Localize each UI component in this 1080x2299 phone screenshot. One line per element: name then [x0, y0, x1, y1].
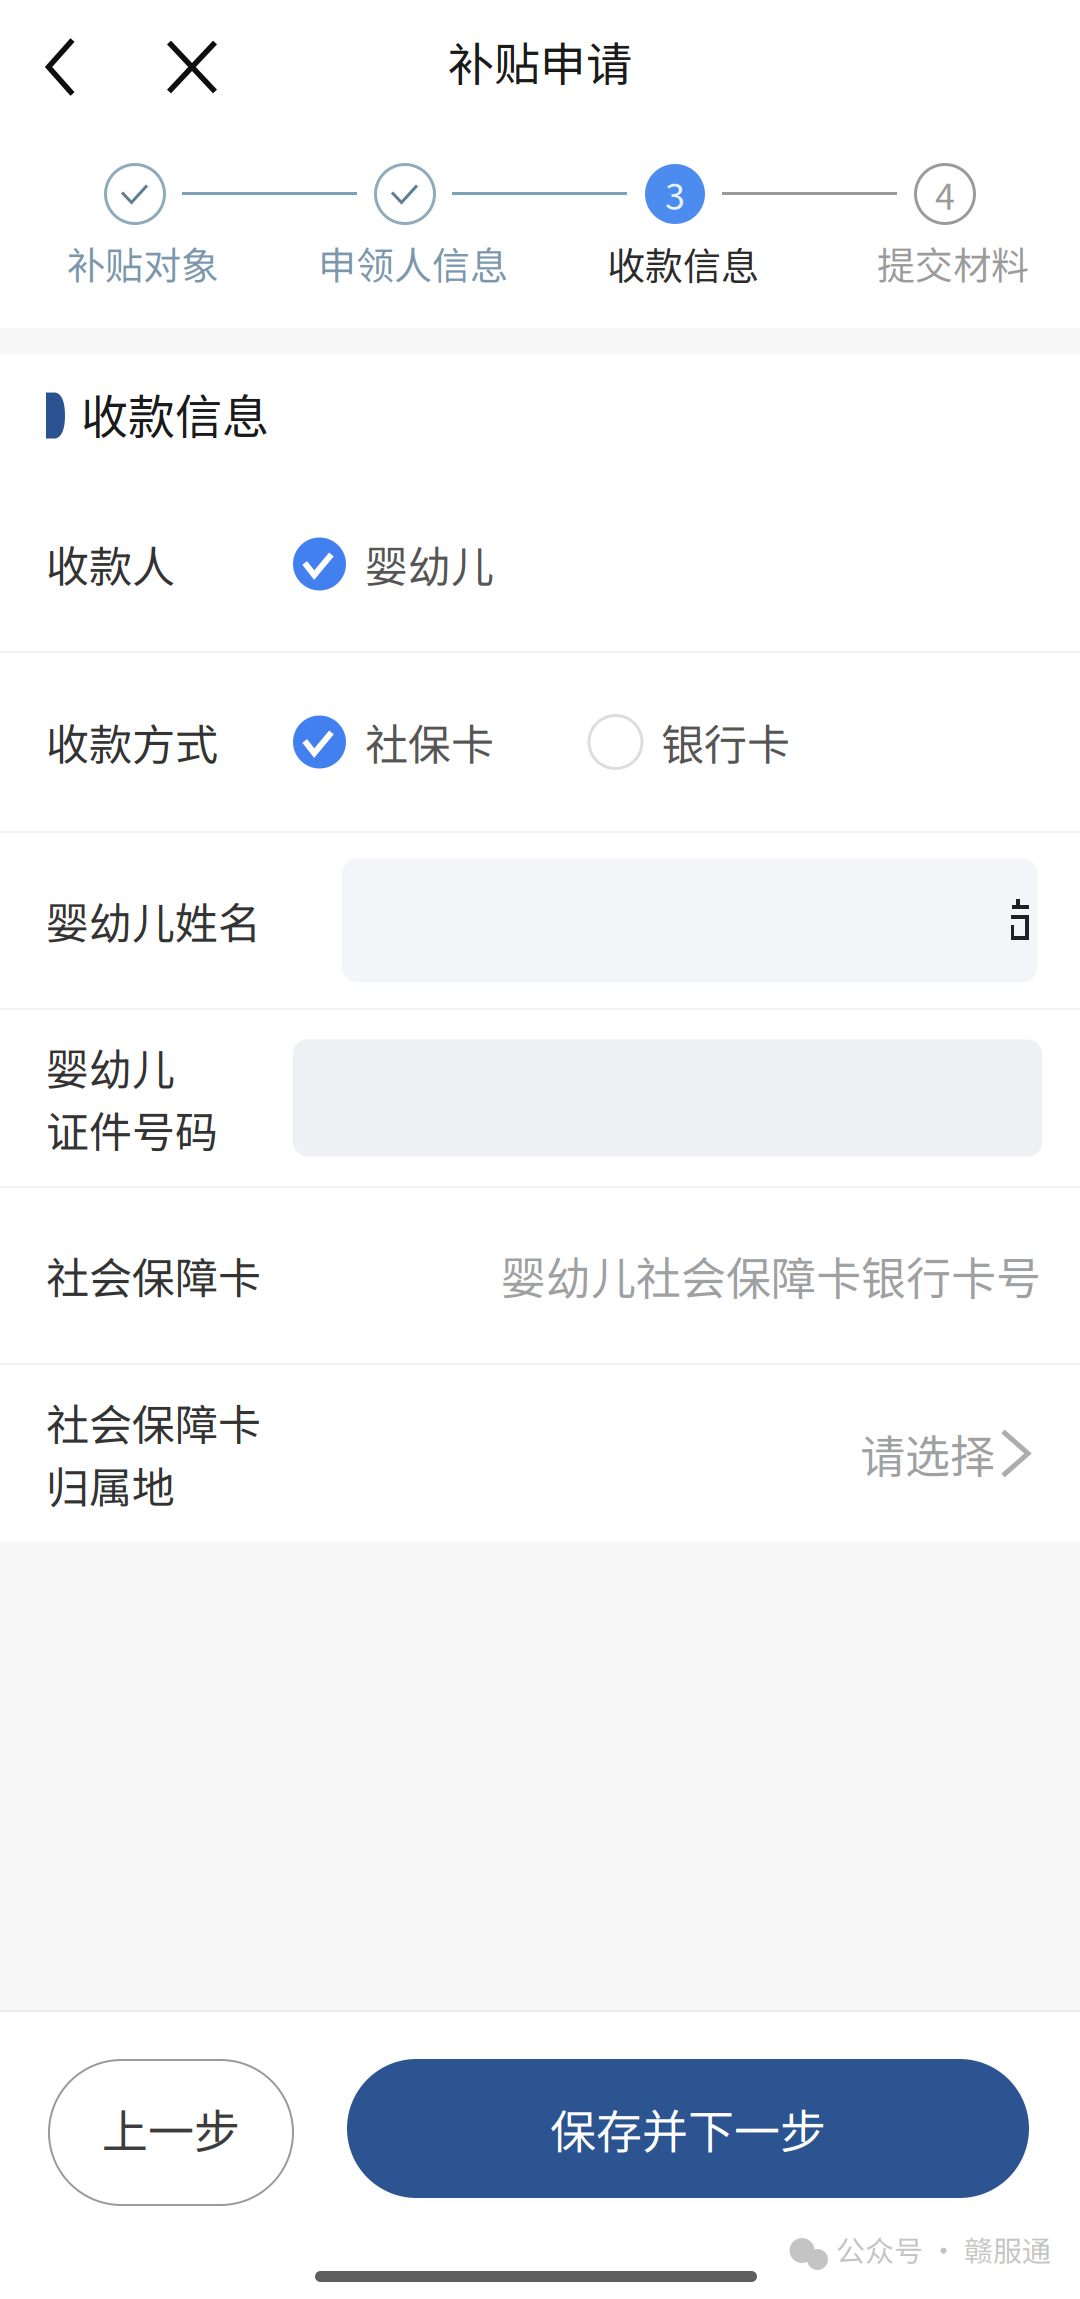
- staticText: 社会保障卡: [46, 1244, 261, 1307]
- staticText: 收款方式: [46, 711, 218, 773]
- staticText: 收款人: [46, 533, 175, 595]
- staticText: 婴幼儿 证件号码: [46, 1036, 218, 1160]
- staticText: 社会保障卡 归属地: [46, 1391, 261, 1516]
- button[interactable]: 保存并下一步: [347, 2059, 1029, 2198]
- button[interactable]: 社会保障卡 归属地: [0, 1365, 1080, 1542]
- staticText: 银行卡: [661, 711, 790, 773]
- staticText: 上一步: [102, 2095, 240, 2162]
- staticText: 社保卡: [365, 711, 494, 773]
- staticText: 4: [935, 168, 955, 220]
- button[interactable]: Back: [0, 0, 121, 128]
- button[interactable]: Close: [121, 0, 263, 128]
- staticText: 婴幼儿社会保障卡银行卡号: [501, 1243, 1041, 1308]
- staticText: 提交材料: [877, 235, 1029, 290]
- staticText: 申领人信息: [318, 235, 508, 290]
- staticText: 婴幼儿: [365, 533, 494, 595]
- staticText: 补贴申请: [448, 28, 632, 94]
- staticText: 收款信息: [81, 379, 269, 448]
- staticText: 婴幼儿姓名: [46, 889, 261, 952]
- staticText: 补贴对象: [67, 235, 219, 290]
- staticText: 3: [665, 168, 685, 220]
- staticText: 保存并下一步: [550, 2095, 826, 2162]
- staticText: 公众号 · 赣服通: [836, 2228, 1051, 2270]
- staticText: 请选择: [860, 1421, 995, 1486]
- staticText: 收款信息: [607, 236, 759, 291]
- button[interactable]: 婴幼儿: [293, 477, 494, 651]
- button[interactable]: 社保卡: [293, 653, 494, 831]
- button[interactable]: 上一步: [49, 2060, 293, 2205]
- button[interactable]: 银行卡: [589, 653, 790, 831]
